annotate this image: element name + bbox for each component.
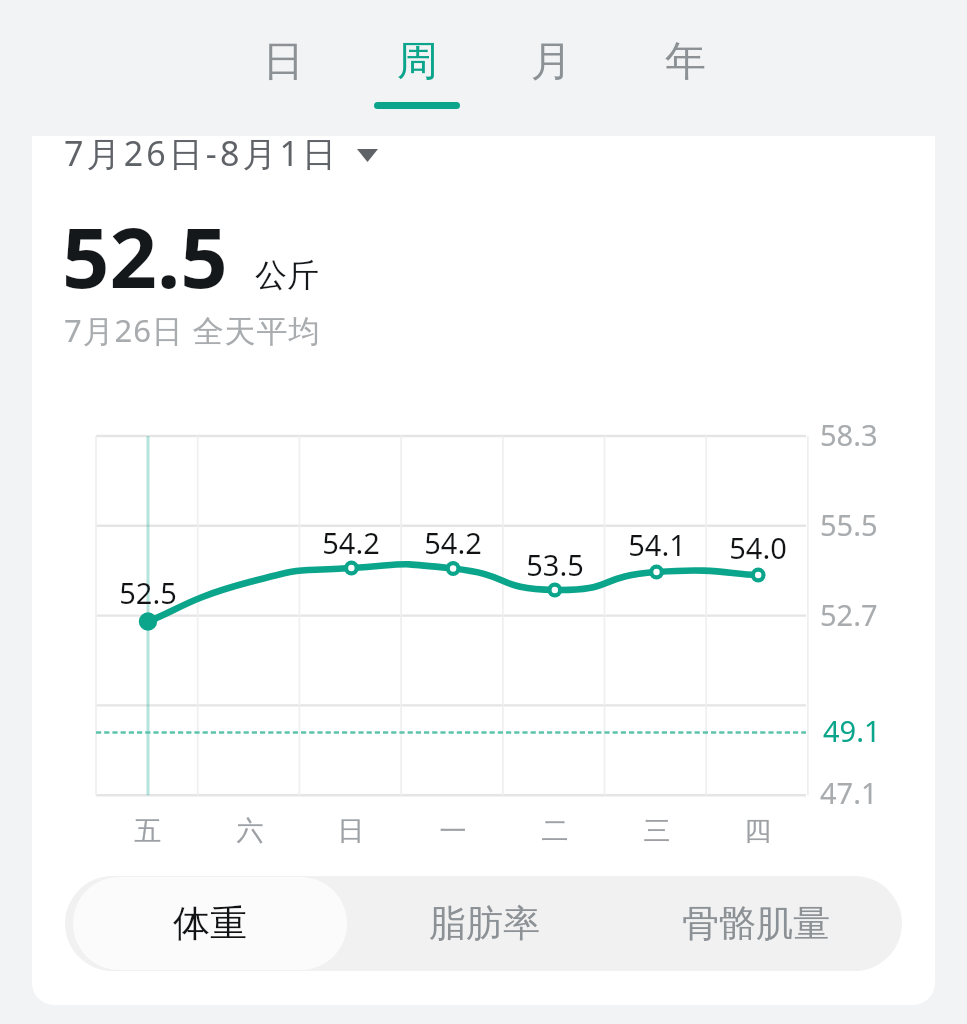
staticText: 49.1 <box>823 711 881 750</box>
staticText: 一 <box>413 814 493 848</box>
button[interactable]: 年 <box>618 0 752 136</box>
staticText: 日 <box>311 814 391 848</box>
staticText: 52.7 <box>820 595 878 634</box>
staticText: 54.2 <box>413 523 493 562</box>
button[interactable]: 骨骼肌量 <box>623 876 889 971</box>
staticText: 54.1 <box>617 525 697 564</box>
staticText: 公斤 <box>255 255 319 295</box>
staticText: 脂肪率 <box>429 900 540 947</box>
staticText: 年 <box>665 36 706 88</box>
other: Change date range <box>357 149 378 162</box>
staticText: 7月26日 全天平均 <box>64 309 321 351</box>
staticText: 三 <box>617 814 697 848</box>
staticText: 55.5 <box>820 505 878 544</box>
staticText: 54.2 <box>311 523 391 562</box>
staticText: 骨骼肌量 <box>682 900 830 947</box>
button[interactable]: 周 <box>350 0 484 136</box>
staticText: 58.3 <box>820 415 878 454</box>
staticText: 52.5 <box>62 199 228 312</box>
button[interactable]: 7月26日-8月1日 <box>64 136 378 176</box>
staticText: 53.5 <box>515 545 595 584</box>
staticText: 日 <box>263 36 304 88</box>
staticText: 周 <box>397 36 438 88</box>
staticText: 7月26日-8月1日 <box>64 136 340 176</box>
staticText: 体重 <box>173 900 247 947</box>
staticText: 月 <box>531 36 572 88</box>
staticText: 五 <box>108 814 188 848</box>
button[interactable]: 日 <box>216 0 350 136</box>
staticText: 52.5 <box>108 573 188 612</box>
staticText: 二 <box>515 814 595 848</box>
staticText: 六 <box>210 814 290 848</box>
button[interactable]: 月 <box>484 0 618 136</box>
staticText: 四 <box>718 814 798 848</box>
button[interactable]: 体重 <box>76 876 344 971</box>
staticText: 54.0 <box>718 528 798 567</box>
button[interactable]: 脂肪率 <box>345 876 623 971</box>
staticText: 47.1 <box>820 773 878 812</box>
